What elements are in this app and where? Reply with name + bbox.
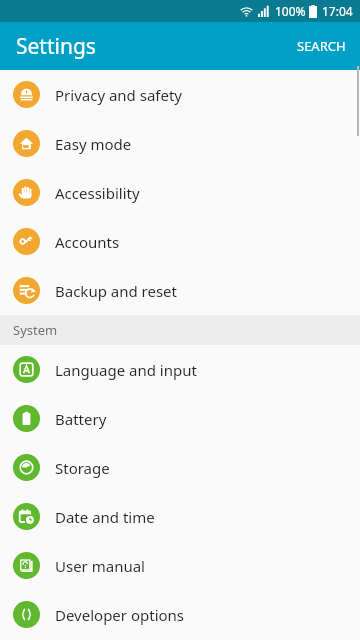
staticText: User manual (55, 556, 145, 576)
button[interactable]: Date and time (0, 492, 360, 541)
staticText: Accounts (55, 232, 120, 252)
button[interactable]: Language and input (0, 345, 360, 394)
button[interactable]: Backup and reset (0, 266, 360, 315)
button[interactable]: Developer options (0, 590, 360, 639)
staticText: Developer options (55, 605, 185, 625)
staticText: Backup and reset (55, 281, 177, 301)
staticText: Settings (16, 32, 96, 61)
staticText: Battery (55, 409, 107, 429)
staticText: 17:04 (322, 3, 353, 19)
button[interactable]: Accounts (0, 217, 360, 266)
staticText: Accessibility (55, 183, 140, 203)
button[interactable]: SEARCH (283, 27, 360, 65)
staticText: 100% (275, 3, 306, 19)
staticText: Storage (55, 458, 110, 478)
staticText: Date and time (55, 507, 155, 527)
button[interactable]: Storage (0, 443, 360, 492)
staticText: Easy mode (55, 134, 132, 154)
button[interactable]: User manual (0, 541, 360, 590)
staticText: Language and input (55, 360, 197, 380)
staticText: SEARCH (297, 37, 346, 55)
button[interactable]: Battery (0, 394, 360, 443)
staticText: System (13, 321, 58, 339)
button[interactable]: Accessibility (0, 168, 360, 217)
button[interactable]: Privacy and safety (0, 70, 360, 119)
button[interactable]: Easy mode (0, 119, 360, 168)
staticText: Privacy and safety (55, 85, 183, 105)
